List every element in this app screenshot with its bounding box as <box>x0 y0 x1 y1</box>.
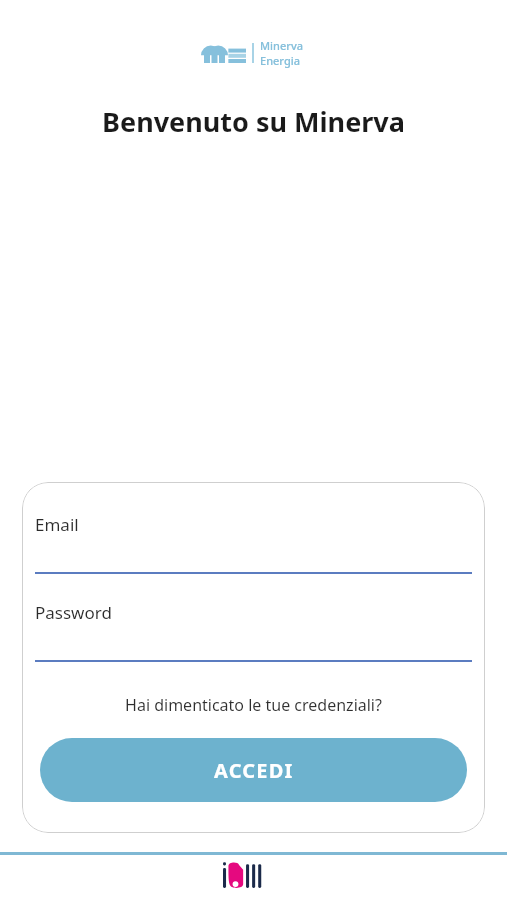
staticText: Energia <box>260 53 300 68</box>
staticText: ACCEDI <box>214 757 294 784</box>
staticText: Password <box>35 601 112 624</box>
button[interactable]: ACCEDI <box>40 738 467 802</box>
staticText: Benvenuto su Minerva <box>0 103 507 140</box>
other: Minerva Energia logo <box>204 43 246 63</box>
staticText: Hai dimenticato le tue credenziali? <box>125 694 382 716</box>
staticText: Email <box>35 513 79 536</box>
staticText: Minerva <box>260 38 304 53</box>
button[interactable]: Hai dimenticato le tue credenziali? <box>22 690 485 720</box>
other: iBill <box>223 861 285 893</box>
